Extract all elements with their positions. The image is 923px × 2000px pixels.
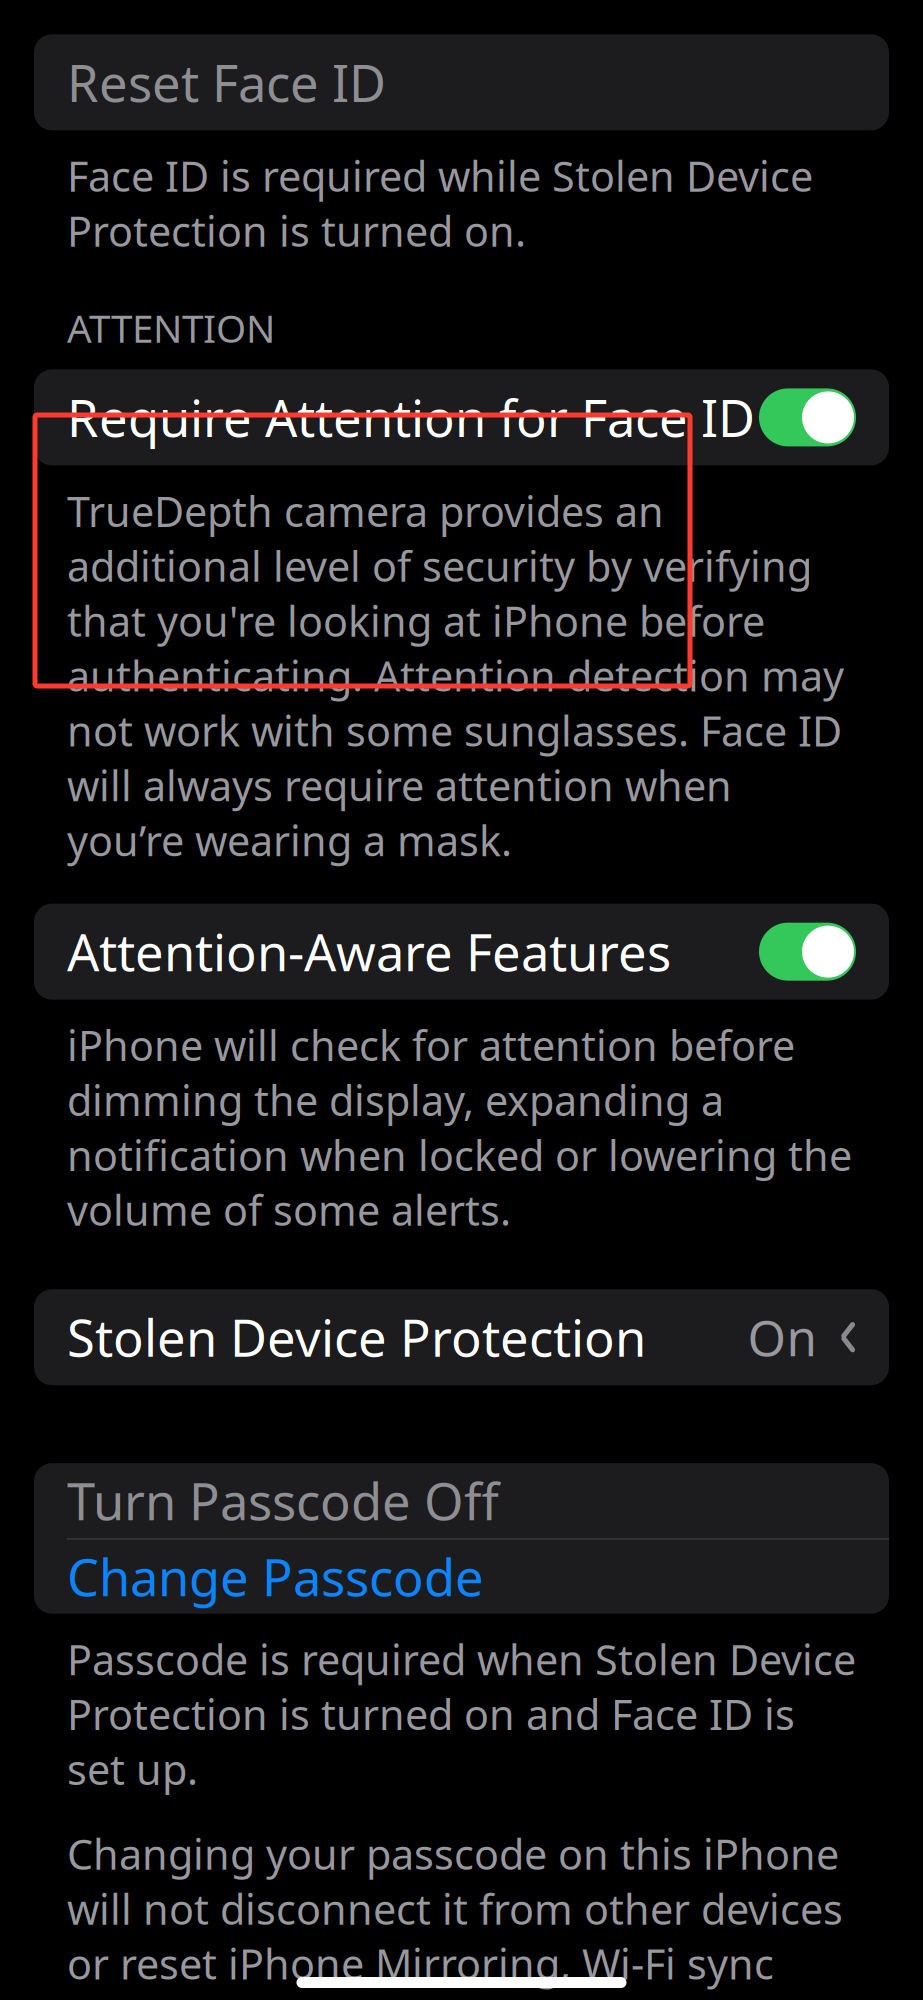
button[interactable]: Require Attention for Face ID — [34, 369, 889, 465]
staticText: Attention-Aware Features — [67, 918, 671, 985]
staticText: ATTENTION — [67, 302, 275, 353]
staticText: Face ID is required while Stolen Device … — [67, 148, 813, 258]
staticText: Turn Passcode Off — [67, 1467, 499, 1534]
button[interactable]: Attention-Aware Features — [34, 904, 889, 1000]
button[interactable]: Turn Passcode Off — [34, 1463, 889, 1538]
staticText: On — [747, 1304, 816, 1370]
staticText: Reset Face ID — [67, 49, 386, 116]
button[interactable]: Reset Face ID — [34, 34, 889, 130]
button[interactable]: Stolen Device Protection — [34, 1289, 889, 1385]
staticText: Change Passcode — [67, 1543, 484, 1610]
staticText: Require Attention for Face ID — [67, 384, 755, 451]
staticText: Passcode is required when Stolen Device … — [67, 1632, 856, 1796]
staticText: TrueDepth camera provides an additional … — [67, 483, 844, 868]
button[interactable]: Change Passcode — [34, 1540, 889, 1614]
staticText: iPhone will check for attention before d… — [67, 1018, 852, 1237]
staticText: Changing your passcode on this iPhone wi… — [67, 1826, 843, 2000]
staticText: Stolen Device Protection — [67, 1303, 646, 1371]
